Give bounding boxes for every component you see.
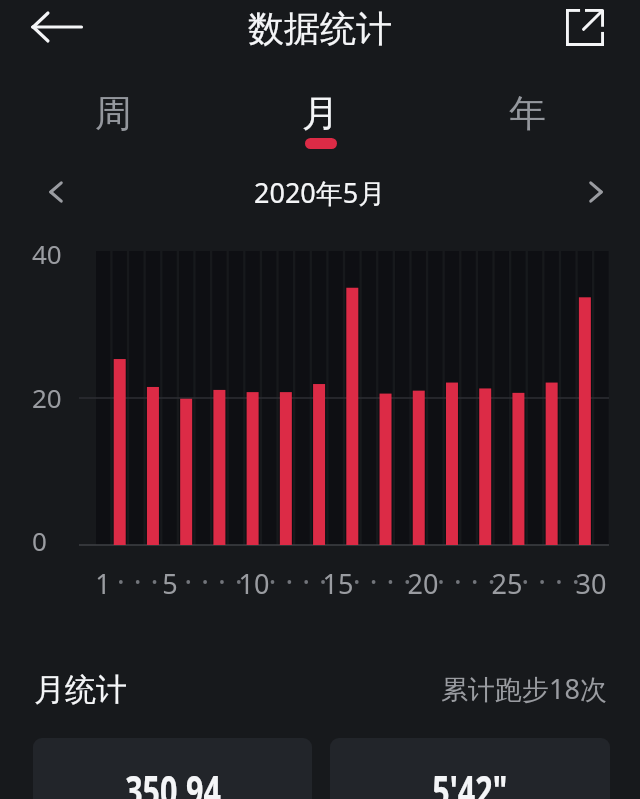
staticText: 2020年5月 [254,174,386,211]
staticText: 20 [32,380,62,415]
staticText: 数据统计 [0,6,640,51]
staticText: 0 [32,523,47,558]
button[interactable]: 5'42" [330,738,610,799]
staticText: 30 [551,565,631,602]
button[interactable]: Back [23,4,91,50]
staticText: 15 [298,565,378,602]
staticText: 年 [509,90,546,137]
staticText: 25 [467,565,547,602]
button[interactable]: 年 [424,90,631,138]
staticText: 350.94 [125,761,221,799]
staticText: 1 [63,565,143,602]
staticText: 月 [302,90,339,137]
button[interactable]: Previous month [32,168,80,216]
staticText: 周 [95,90,132,137]
button[interactable]: Share [556,0,614,54]
button[interactable]: 月 [217,90,424,149]
staticText: 20 [383,565,463,602]
button[interactable]: 周 [9,90,217,138]
staticText: 5'42" [432,761,508,799]
staticText: 10 [214,565,294,602]
staticText: 月统计 [34,670,127,709]
staticText: 40 [32,236,62,271]
button[interactable]: Next month [572,168,620,216]
button[interactable]: 350.94 [33,738,312,799]
staticText: 5 [130,565,210,602]
staticText: 累计跑步18次 [0,670,607,707]
